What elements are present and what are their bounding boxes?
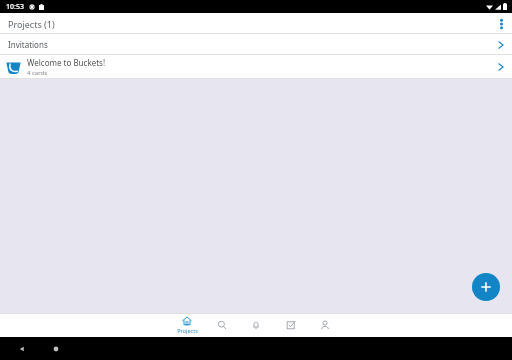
staticText: Invitations — [8, 39, 48, 50]
staticText: Projects (1) — [8, 18, 55, 30]
button[interactable]: Profile — [308, 313, 342, 337]
button[interactable]: Notifications — [239, 313, 273, 337]
staticText: Projects — [177, 327, 198, 334]
button[interactable]: Welcome to Buckets! — [0, 55, 512, 79]
button[interactable]: Projects — [170, 313, 204, 337]
button[interactable]: Add project — [472, 273, 500, 301]
button[interactable]: More options — [490, 13, 512, 34]
staticText: Welcome to Buckets! — [27, 57, 106, 68]
button[interactable]: Invitations — [0, 34, 512, 55]
button[interactable]: Back — [18, 345, 26, 353]
button[interactable]: Home — [52, 345, 60, 353]
button[interactable]: Tasks — [274, 313, 308, 337]
button[interactable]: Search — [205, 313, 239, 337]
staticText: 4 cards — [27, 69, 48, 77]
staticText: 10:53 — [6, 2, 24, 12]
